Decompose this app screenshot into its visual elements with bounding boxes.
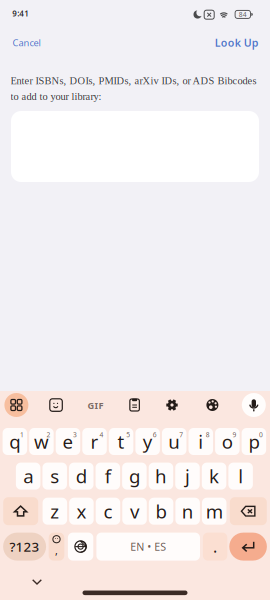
- staticText: EN • ES: [130, 539, 166, 554]
- button[interactable]: Hide keyboard: [32, 579, 42, 585]
- staticText: 84: [239, 10, 247, 19]
- staticText: 3: [73, 430, 77, 439]
- staticText: g: [129, 464, 140, 488]
- button[interactable]: y: [135, 428, 160, 455]
- staticText: w: [34, 429, 49, 454]
- staticText: 9: [232, 430, 236, 439]
- staticText: 2: [46, 430, 50, 439]
- button[interactable]: a: [16, 463, 40, 490]
- button[interactable]: b: [149, 498, 173, 525]
- staticText: 6: [153, 430, 157, 439]
- button[interactable]: Clipboard: [129, 398, 141, 411]
- button[interactable]: u: [162, 428, 186, 455]
- staticText: f: [105, 464, 111, 488]
- staticText: u: [168, 429, 180, 454]
- button[interactable]: h: [149, 463, 173, 490]
- button[interactable]: Stickers: [50, 399, 62, 411]
- staticText: ,: [55, 543, 58, 558]
- button[interactable]: e: [56, 428, 80, 455]
- button[interactable]: v: [122, 498, 147, 525]
- staticText: j: [185, 464, 190, 488]
- staticText: Look Up: [215, 35, 259, 50]
- staticText: c: [103, 499, 112, 524]
- staticText: h: [155, 464, 167, 488]
- staticText: 8: [206, 430, 210, 439]
- staticText: l: [238, 464, 243, 488]
- staticText: Cancel: [12, 36, 40, 49]
- staticText: GIF: [87, 399, 103, 412]
- button[interactable]: s: [42, 463, 67, 490]
- staticText: i: [198, 429, 203, 454]
- staticText: b: [156, 499, 167, 524]
- button[interactable]: Settings: [166, 399, 178, 411]
- button[interactable]: f: [96, 463, 120, 490]
- staticText: n: [182, 499, 194, 524]
- button[interactable]: w: [29, 428, 54, 455]
- button[interactable]: GIF: [87, 399, 103, 412]
- button[interactable]: Numbers and symbols: [3, 533, 46, 561]
- staticText: y: [143, 429, 153, 454]
- staticText: 1: [20, 430, 24, 439]
- button[interactable]: k: [202, 463, 226, 490]
- staticText: 5: [126, 430, 130, 439]
- button[interactable]: z: [43, 498, 67, 525]
- button[interactable]: p: [242, 428, 266, 455]
- button[interactable]: x: [69, 498, 94, 525]
- staticText: 4: [100, 430, 104, 439]
- staticText: x: [76, 499, 86, 524]
- staticText: 0: [259, 430, 263, 439]
- staticText: ?123: [10, 538, 40, 555]
- button[interactable]: Shift: [3, 497, 38, 525]
- button[interactable]: r: [82, 428, 107, 455]
- button[interactable]: Switch language: [68, 533, 93, 561]
- staticText: .: [213, 536, 217, 557]
- button[interactable]: Look Up: [199, 36, 259, 49]
- button[interactable]: Themes: [206, 399, 218, 411]
- button[interactable]: Keyboard apps: [4, 393, 28, 417]
- button[interactable]: Return: [229, 533, 267, 561]
- staticText: Enter ISBNs, DOIs, PMIDs, arXiv IDs, or …: [11, 75, 257, 102]
- button[interactable]: Emoji: [49, 533, 64, 561]
- staticText: 9:41: [12, 8, 29, 19]
- button[interactable]: o: [215, 428, 240, 455]
- button[interactable]: Period: [203, 533, 227, 561]
- button[interactable]: m: [202, 498, 226, 525]
- button[interactable]: c: [96, 498, 120, 525]
- staticText: k: [209, 464, 219, 488]
- staticText: s: [50, 464, 59, 488]
- staticText: t: [118, 429, 125, 454]
- staticText: 7: [179, 430, 183, 439]
- staticText: e: [62, 429, 73, 454]
- staticText: d: [76, 464, 87, 488]
- staticText: z: [50, 499, 59, 524]
- button[interactable]: Cancel: [12, 36, 72, 49]
- button[interactable]: Voice input: [242, 393, 266, 417]
- staticText: v: [130, 499, 139, 524]
- staticText: p: [248, 429, 259, 454]
- button[interactable]: t: [109, 428, 133, 455]
- button[interactable]: g: [122, 463, 147, 490]
- staticText: m: [206, 499, 223, 524]
- button[interactable]: d: [69, 463, 93, 490]
- staticText: q: [9, 429, 20, 454]
- button[interactable]: j: [175, 463, 200, 490]
- staticText: a: [23, 464, 33, 488]
- button[interactable]: Space: [96, 533, 200, 561]
- button[interactable]: q: [3, 428, 27, 455]
- button[interactable]: i: [188, 428, 213, 455]
- button[interactable]: n: [175, 498, 200, 525]
- button[interactable]: l: [228, 463, 253, 490]
- staticText: o: [222, 429, 233, 454]
- staticText: r: [90, 429, 98, 454]
- button[interactable]: Backspace: [230, 497, 267, 525]
